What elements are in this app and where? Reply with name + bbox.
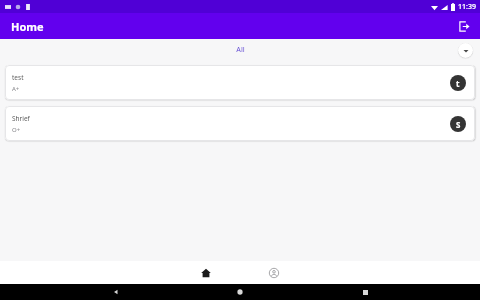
- staticText: Home: [11, 19, 44, 34]
- button[interactable]: Shrief: [5, 106, 475, 141]
- staticText: 11:39: [458, 2, 476, 12]
- button[interactable]: Home: [194, 261, 218, 284]
- button[interactable]: Logout: [454, 16, 474, 36]
- button[interactable]: Recent apps: [356, 284, 374, 300]
- staticText: Shrief: [12, 114, 30, 123]
- staticText: test: [12, 73, 24, 82]
- staticText: S: [456, 119, 461, 130]
- button[interactable]: All: [236, 45, 245, 55]
- staticText: O+: [12, 126, 21, 134]
- button[interactable]: test: [5, 65, 475, 100]
- button[interactable]: Account: [262, 261, 286, 284]
- button[interactable]: Home: [231, 284, 249, 300]
- button[interactable]: Filter dropdown: [458, 43, 473, 58]
- button[interactable]: Back: [107, 284, 125, 300]
- staticText: t: [456, 78, 460, 89]
- staticText: A+: [12, 85, 20, 93]
